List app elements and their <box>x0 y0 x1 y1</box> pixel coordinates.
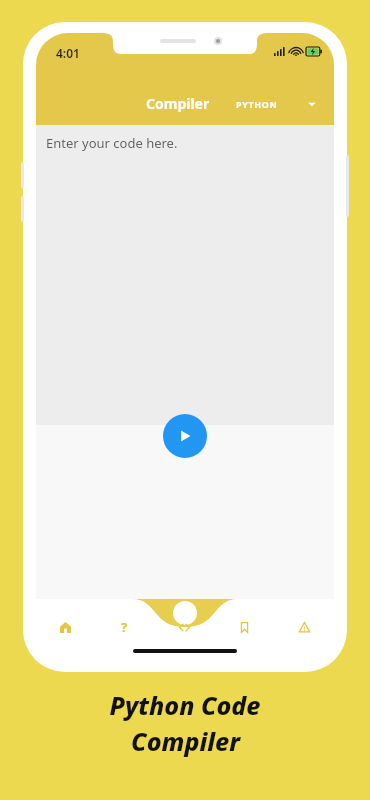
button[interactable]: Saved <box>214 612 274 642</box>
staticText: Compiler <box>131 724 240 758</box>
button[interactable]: Code <box>154 611 214 643</box>
staticText: Compiler <box>146 94 210 113</box>
button[interactable]: Run <box>163 414 207 458</box>
staticText: Enter your code here. <box>46 134 178 152</box>
staticText: 4:01 <box>56 45 80 61</box>
button[interactable]: Enter your code here. <box>36 125 334 425</box>
button[interactable]: Home <box>36 612 95 642</box>
staticText: PYTHON <box>236 98 278 110</box>
button[interactable]: PYTHON <box>236 98 318 110</box>
button[interactable]: Help <box>95 612 154 642</box>
staticText: ? <box>121 618 128 636</box>
staticText: Python Code <box>109 688 261 722</box>
button[interactable]: About <box>274 612 334 642</box>
